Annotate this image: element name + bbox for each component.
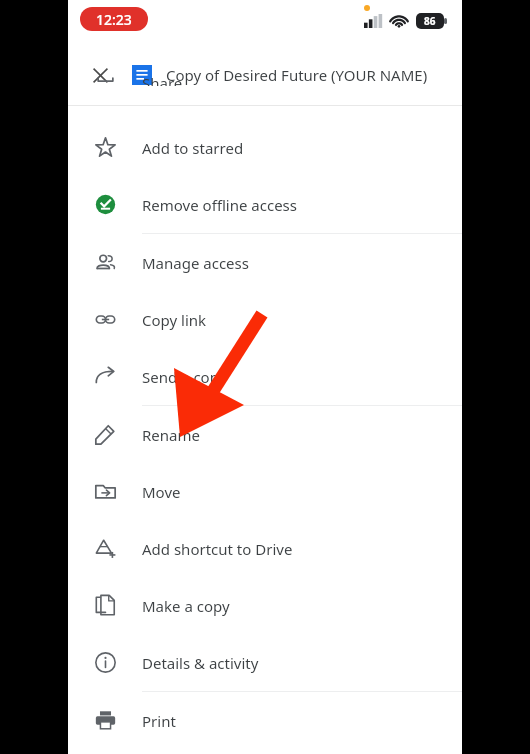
button[interactable]: Make a copy [68,577,462,634]
button[interactable]: Print [68,692,462,749]
staticText: Copy of Desired Future (YOUR NAME) [166,65,428,85]
button[interactable]: Remove offline access [68,176,462,233]
button[interactable]: Move [68,463,462,520]
button[interactable]: Add to starred [68,119,462,176]
staticText: 86 [424,14,436,28]
staticText: Make a copy [142,596,230,616]
button[interactable]: Share [68,73,462,86]
staticText: Copy link [142,310,207,330]
staticText: Manage access [142,253,249,273]
button[interactable]: Copy link [68,291,462,348]
button[interactable]: Add shortcut to Drive [68,520,462,577]
staticText: Move [142,482,181,502]
button[interactable]: Details & activity [68,634,462,691]
staticText: Details & activity [142,653,259,673]
button[interactable]: Send a copy [68,348,462,405]
staticText: Add to starred [142,138,244,158]
staticText: Print [142,711,176,731]
staticText: Add shortcut to Drive [142,539,293,559]
staticText: Remove offline access [142,195,297,215]
button[interactable]: Close [68,45,132,105]
button[interactable]: Rename [68,406,462,463]
staticText: Rename [142,425,200,445]
button[interactable]: Manage access [68,234,462,291]
staticText: Send a copy [142,367,227,387]
staticText: 12:23 [96,10,132,29]
staticText: Share [142,73,183,86]
